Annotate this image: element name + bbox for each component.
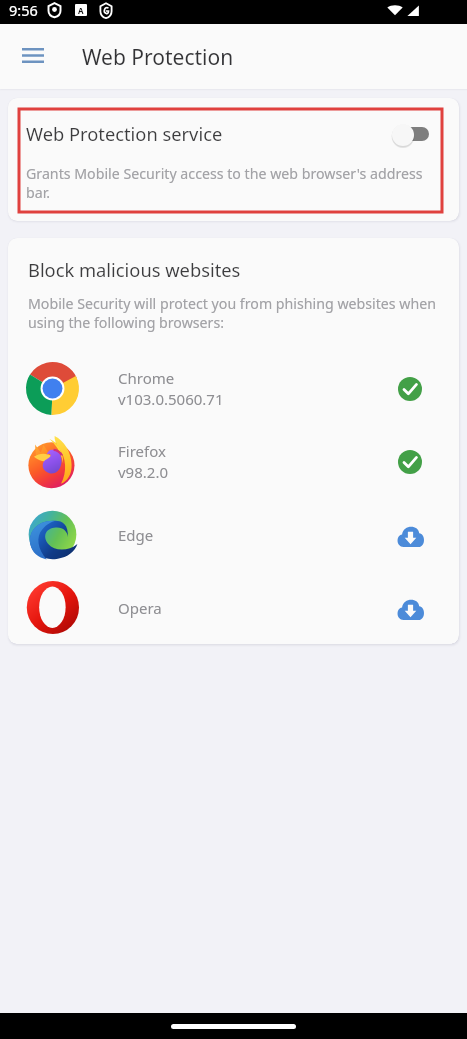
staticText: Mobile Security will protect you from ph… (28, 294, 451, 332)
staticText: Edge (118, 525, 154, 545)
staticText: 9:56 (9, 0, 38, 20)
staticText: Grants Mobile Security access to the web… (26, 164, 435, 202)
button[interactable]: Opera (8, 571, 459, 644)
staticText: Chrome (118, 368, 175, 388)
button[interactable]: Firefox (8, 425, 459, 498)
staticText: Web Protection (82, 43, 234, 72)
button[interactable]: Download (392, 517, 428, 553)
staticText: A (78, 5, 84, 16)
button[interactable]: Open navigation menu (5, 27, 61, 83)
staticText: v98.2.0 (118, 462, 168, 482)
button[interactable]: Protected (392, 371, 428, 407)
button[interactable]: Edge (8, 498, 459, 571)
staticText: Opera (118, 598, 162, 618)
button[interactable]: Download (392, 590, 428, 626)
button[interactable]: Chrome (8, 352, 459, 425)
staticText: v103.0.5060.71 (118, 389, 224, 409)
staticText: Firefox (118, 441, 166, 461)
staticText: Block malicious websites (28, 257, 241, 282)
button[interactable]: Protected (392, 444, 428, 480)
button[interactable]: Web Protection service (8, 98, 459, 221)
staticText: Web Protection service (26, 121, 223, 146)
